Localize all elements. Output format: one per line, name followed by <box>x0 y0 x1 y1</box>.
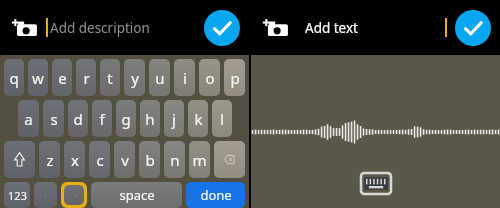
button[interactable]: f <box>92 100 112 137</box>
button[interactable]: Add photo <box>258 11 292 45</box>
staticText: u <box>155 68 165 88</box>
staticText: space <box>119 186 155 204</box>
button[interactable]: space <box>91 182 182 208</box>
staticText: o <box>205 68 215 88</box>
staticText: 123 <box>8 188 27 203</box>
button[interactable]: z <box>39 141 60 178</box>
staticText: l <box>220 109 224 129</box>
button[interactable]: k <box>188 100 208 137</box>
button[interactable]: s <box>43 100 64 137</box>
staticText: k <box>194 109 203 129</box>
staticText: m <box>192 150 207 170</box>
button[interactable]: e <box>52 59 72 96</box>
staticText: Add text automatically <box>305 19 444 37</box>
staticText: f <box>99 109 105 129</box>
button[interactable]: Add description (optional) <box>50 19 196 37</box>
staticText: h <box>145 109 155 129</box>
button[interactable]: y <box>124 59 145 96</box>
staticText: j <box>172 109 176 129</box>
button[interactable]: Emoji <box>34 182 57 208</box>
button[interactable]: Shift <box>4 141 35 178</box>
staticText: w <box>32 68 44 88</box>
button[interactable]: w <box>28 59 48 96</box>
button[interactable]: n <box>164 141 185 178</box>
staticText: q <box>9 68 19 88</box>
button[interactable]: Confirm <box>204 10 240 46</box>
button[interactable]: j <box>164 100 184 137</box>
button[interactable]: v <box>114 141 135 178</box>
button[interactable]: h <box>140 100 160 137</box>
staticText: x <box>71 150 79 170</box>
staticText: a <box>24 109 33 129</box>
button[interactable]: done <box>186 182 245 208</box>
button[interactable]: Backspace <box>214 141 245 178</box>
button[interactable]: g <box>116 100 136 137</box>
staticText: n <box>170 150 180 170</box>
button[interactable]: x <box>64 141 85 178</box>
staticText: e <box>58 68 67 88</box>
button[interactable]: l <box>212 100 232 137</box>
button[interactable]: q <box>4 59 24 96</box>
button[interactable]: r <box>76 59 96 96</box>
button[interactable]: Confirm <box>455 10 491 46</box>
staticText: g <box>121 109 131 129</box>
button[interactable]: a <box>18 100 39 137</box>
staticText: y <box>131 68 139 88</box>
button[interactable]: o <box>199 59 220 96</box>
button[interactable]: Show keyboard <box>361 173 391 194</box>
staticText: s <box>50 109 58 129</box>
button[interactable]: c <box>89 141 110 178</box>
staticText: done <box>200 186 232 204</box>
staticText: Add description (optional) <box>50 19 196 37</box>
button[interactable]: b <box>139 141 160 178</box>
staticText: p <box>230 68 240 88</box>
staticText: t <box>107 68 113 88</box>
staticText: z <box>46 150 54 170</box>
staticText: b <box>145 150 155 170</box>
staticText: d <box>73 109 83 129</box>
button[interactable]: t <box>100 59 120 96</box>
staticText: v <box>121 150 129 170</box>
button[interactable]: Add photo <box>7 11 41 45</box>
staticText: i <box>183 68 187 88</box>
button[interactable]: i <box>174 59 195 96</box>
staticText: c <box>96 150 104 170</box>
button[interactable]: Voice input <box>64 185 84 205</box>
button[interactable]: m <box>189 141 210 178</box>
button[interactable]: d <box>68 100 88 137</box>
button[interactable]: Add text automatically <box>305 19 444 37</box>
button[interactable]: 123 <box>4 182 30 208</box>
staticText: r <box>83 68 90 88</box>
button[interactable]: p <box>224 59 245 96</box>
button[interactable]: u <box>149 59 170 96</box>
